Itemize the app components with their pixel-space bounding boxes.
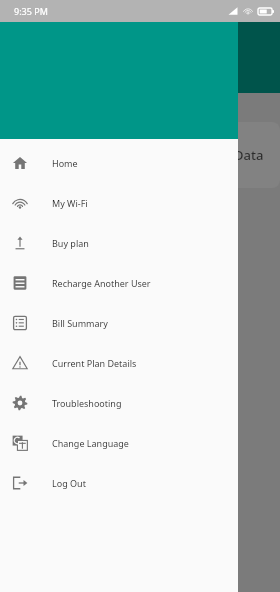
staticText: Bill Summary <box>52 317 108 329</box>
staticText: My Wi-Fi <box>52 197 88 209</box>
staticText: Data <box>234 146 264 164</box>
button[interactable]: Recharge Another User <box>0 263 238 303</box>
staticText: Change Language <box>52 437 129 449</box>
button[interactable]: Bill Summary <box>0 303 238 343</box>
staticText: Buy plan <box>52 237 89 249</box>
staticText: Troubleshooting <box>52 397 122 409</box>
button[interactable]: Troubleshooting <box>0 383 238 423</box>
staticText: Recharge Another User <box>52 277 151 289</box>
button[interactable]: Home <box>0 143 238 183</box>
button[interactable]: My Wi-Fi <box>0 183 238 223</box>
button[interactable]: Log Out <box>0 463 238 503</box>
staticText: 9:35 PM <box>14 5 48 17</box>
staticText: Current Plan Details <box>52 357 137 369</box>
button[interactable]: Current Plan Details <box>0 343 238 383</box>
staticText: Log Out <box>52 477 86 489</box>
button[interactable]: Data <box>196 122 280 188</box>
button[interactable]: Change Language <box>0 423 238 463</box>
staticText: Home <box>52 157 78 169</box>
button[interactable]: Buy plan <box>0 223 238 263</box>
